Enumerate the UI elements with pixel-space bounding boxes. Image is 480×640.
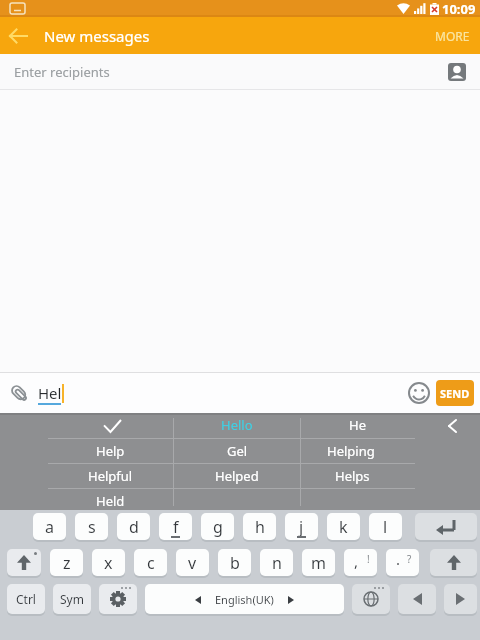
button[interactable]: h	[243, 513, 276, 540]
staticText: 10:09	[442, 0, 476, 17]
button[interactable]: Hello	[177, 413, 297, 437]
button[interactable]: m	[302, 549, 335, 576]
button[interactable]	[0, 18, 36, 54]
button[interactable]: v	[176, 549, 209, 576]
staticText: g	[213, 516, 223, 538]
staticText: l	[383, 516, 388, 538]
staticText: Helping	[327, 442, 375, 460]
staticText: He	[349, 416, 366, 434]
button[interactable]	[408, 382, 430, 404]
button[interactable]: ,	[344, 549, 377, 576]
button[interactable]	[398, 584, 436, 614]
staticText: k	[339, 516, 348, 538]
button[interactable]: x	[92, 549, 125, 576]
staticText: Helpful	[88, 467, 133, 485]
button[interactable]	[415, 513, 477, 540]
button[interactable]: c	[134, 549, 167, 576]
staticText: English(UK)	[215, 592, 274, 607]
button[interactable]: Gel	[177, 439, 297, 463]
button[interactable]: n	[260, 549, 293, 576]
button[interactable]: f	[159, 513, 192, 540]
button[interactable]: d	[117, 513, 150, 540]
staticText: z	[63, 552, 71, 574]
button[interactable]: Helped	[177, 464, 297, 488]
staticText: n	[272, 552, 282, 574]
staticText: Help	[96, 442, 125, 460]
staticText: Ctrl	[16, 591, 36, 607]
button[interactable]	[444, 584, 477, 614]
button[interactable]	[7, 549, 41, 576]
button[interactable]: SEND	[436, 380, 474, 406]
button[interactable]	[352, 584, 390, 614]
button[interactable]: .	[386, 549, 419, 576]
button[interactable]	[85, 413, 140, 438]
button[interactable]: Helpful	[50, 464, 170, 488]
button[interactable]: g	[201, 513, 234, 540]
staticText: Helps	[335, 467, 370, 485]
staticText: .	[396, 549, 401, 569]
staticText: b	[230, 552, 240, 574]
staticText: a	[45, 516, 54, 538]
staticText: Helped	[215, 467, 259, 485]
staticText: h	[255, 516, 265, 538]
staticText: New messages	[44, 26, 150, 46]
button[interactable]	[448, 63, 466, 81]
button[interactable]: z	[50, 549, 83, 576]
button[interactable]: s	[75, 513, 108, 540]
button[interactable]: j	[285, 513, 318, 540]
button[interactable]: He	[297, 413, 417, 437]
staticText: Held	[96, 492, 125, 510]
staticText: c	[147, 552, 155, 574]
staticText: Sym	[60, 591, 84, 607]
button[interactable]: Helping	[291, 439, 411, 463]
staticText: Hello	[221, 416, 253, 434]
staticText: SEND	[440, 386, 470, 401]
staticText: f	[173, 516, 179, 538]
staticText: ,	[354, 551, 359, 571]
button[interactable]: Sym	[53, 584, 91, 614]
button[interactable]: b	[218, 549, 251, 576]
staticText: j	[299, 516, 304, 538]
staticText: Hel	[38, 383, 62, 403]
button[interactable]: Ctrl	[7, 584, 45, 614]
button[interactable]: Help	[50, 439, 170, 463]
staticText: x	[104, 552, 113, 574]
button[interactable]	[440, 414, 464, 438]
button[interactable]: a	[33, 513, 66, 540]
button[interactable]: l	[369, 513, 402, 540]
button[interactable]	[99, 584, 137, 614]
staticText: v	[188, 552, 197, 574]
button[interactable]: English(UK)	[145, 584, 344, 614]
staticText: Enter recipients	[14, 63, 110, 81]
staticText: d	[129, 516, 139, 538]
staticText: Gel	[227, 442, 248, 460]
button[interactable]: Helps	[292, 464, 412, 488]
staticText: m	[311, 552, 326, 574]
button[interactable]: MORE	[435, 28, 470, 44]
staticText: s	[88, 516, 96, 538]
staticText: !	[367, 552, 370, 566]
staticText: MORE	[435, 28, 470, 44]
button[interactable]: k	[327, 513, 360, 540]
staticText: ?	[407, 552, 412, 566]
button[interactable]	[7, 381, 31, 405]
button[interactable]	[430, 549, 477, 576]
button[interactable]: Held	[50, 489, 170, 513]
